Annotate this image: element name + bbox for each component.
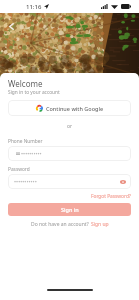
staticText: Forgot Password? xyxy=(91,193,131,200)
staticText: Sign in to your account xyxy=(8,89,60,96)
button[interactable]: ••••••••••• xyxy=(8,174,131,189)
staticText: Welcome xyxy=(8,78,43,89)
button[interactable]: •••••••••• xyxy=(8,146,131,161)
staticText: 11:16 xyxy=(26,3,42,11)
button[interactable]: Show password xyxy=(120,179,126,185)
staticText: Sign in xyxy=(61,206,79,213)
staticText: ••••••••••• xyxy=(14,178,37,185)
staticText: Continue with Google xyxy=(46,105,104,112)
button[interactable]: Continue with Google xyxy=(8,100,131,116)
staticText: Do not have an account? xyxy=(31,221,91,228)
button[interactable]: Sign in xyxy=(8,203,131,216)
button[interactable]: Back xyxy=(6,21,17,32)
staticText: or xyxy=(67,123,73,130)
staticText: Password xyxy=(8,166,30,173)
staticText: Phone Number xyxy=(8,138,43,145)
staticText: Sign up xyxy=(91,221,109,228)
button[interactable]: Sign up xyxy=(91,221,109,228)
button[interactable]: Forgot Password? xyxy=(91,193,131,200)
staticText: •••••••••• xyxy=(21,150,42,157)
